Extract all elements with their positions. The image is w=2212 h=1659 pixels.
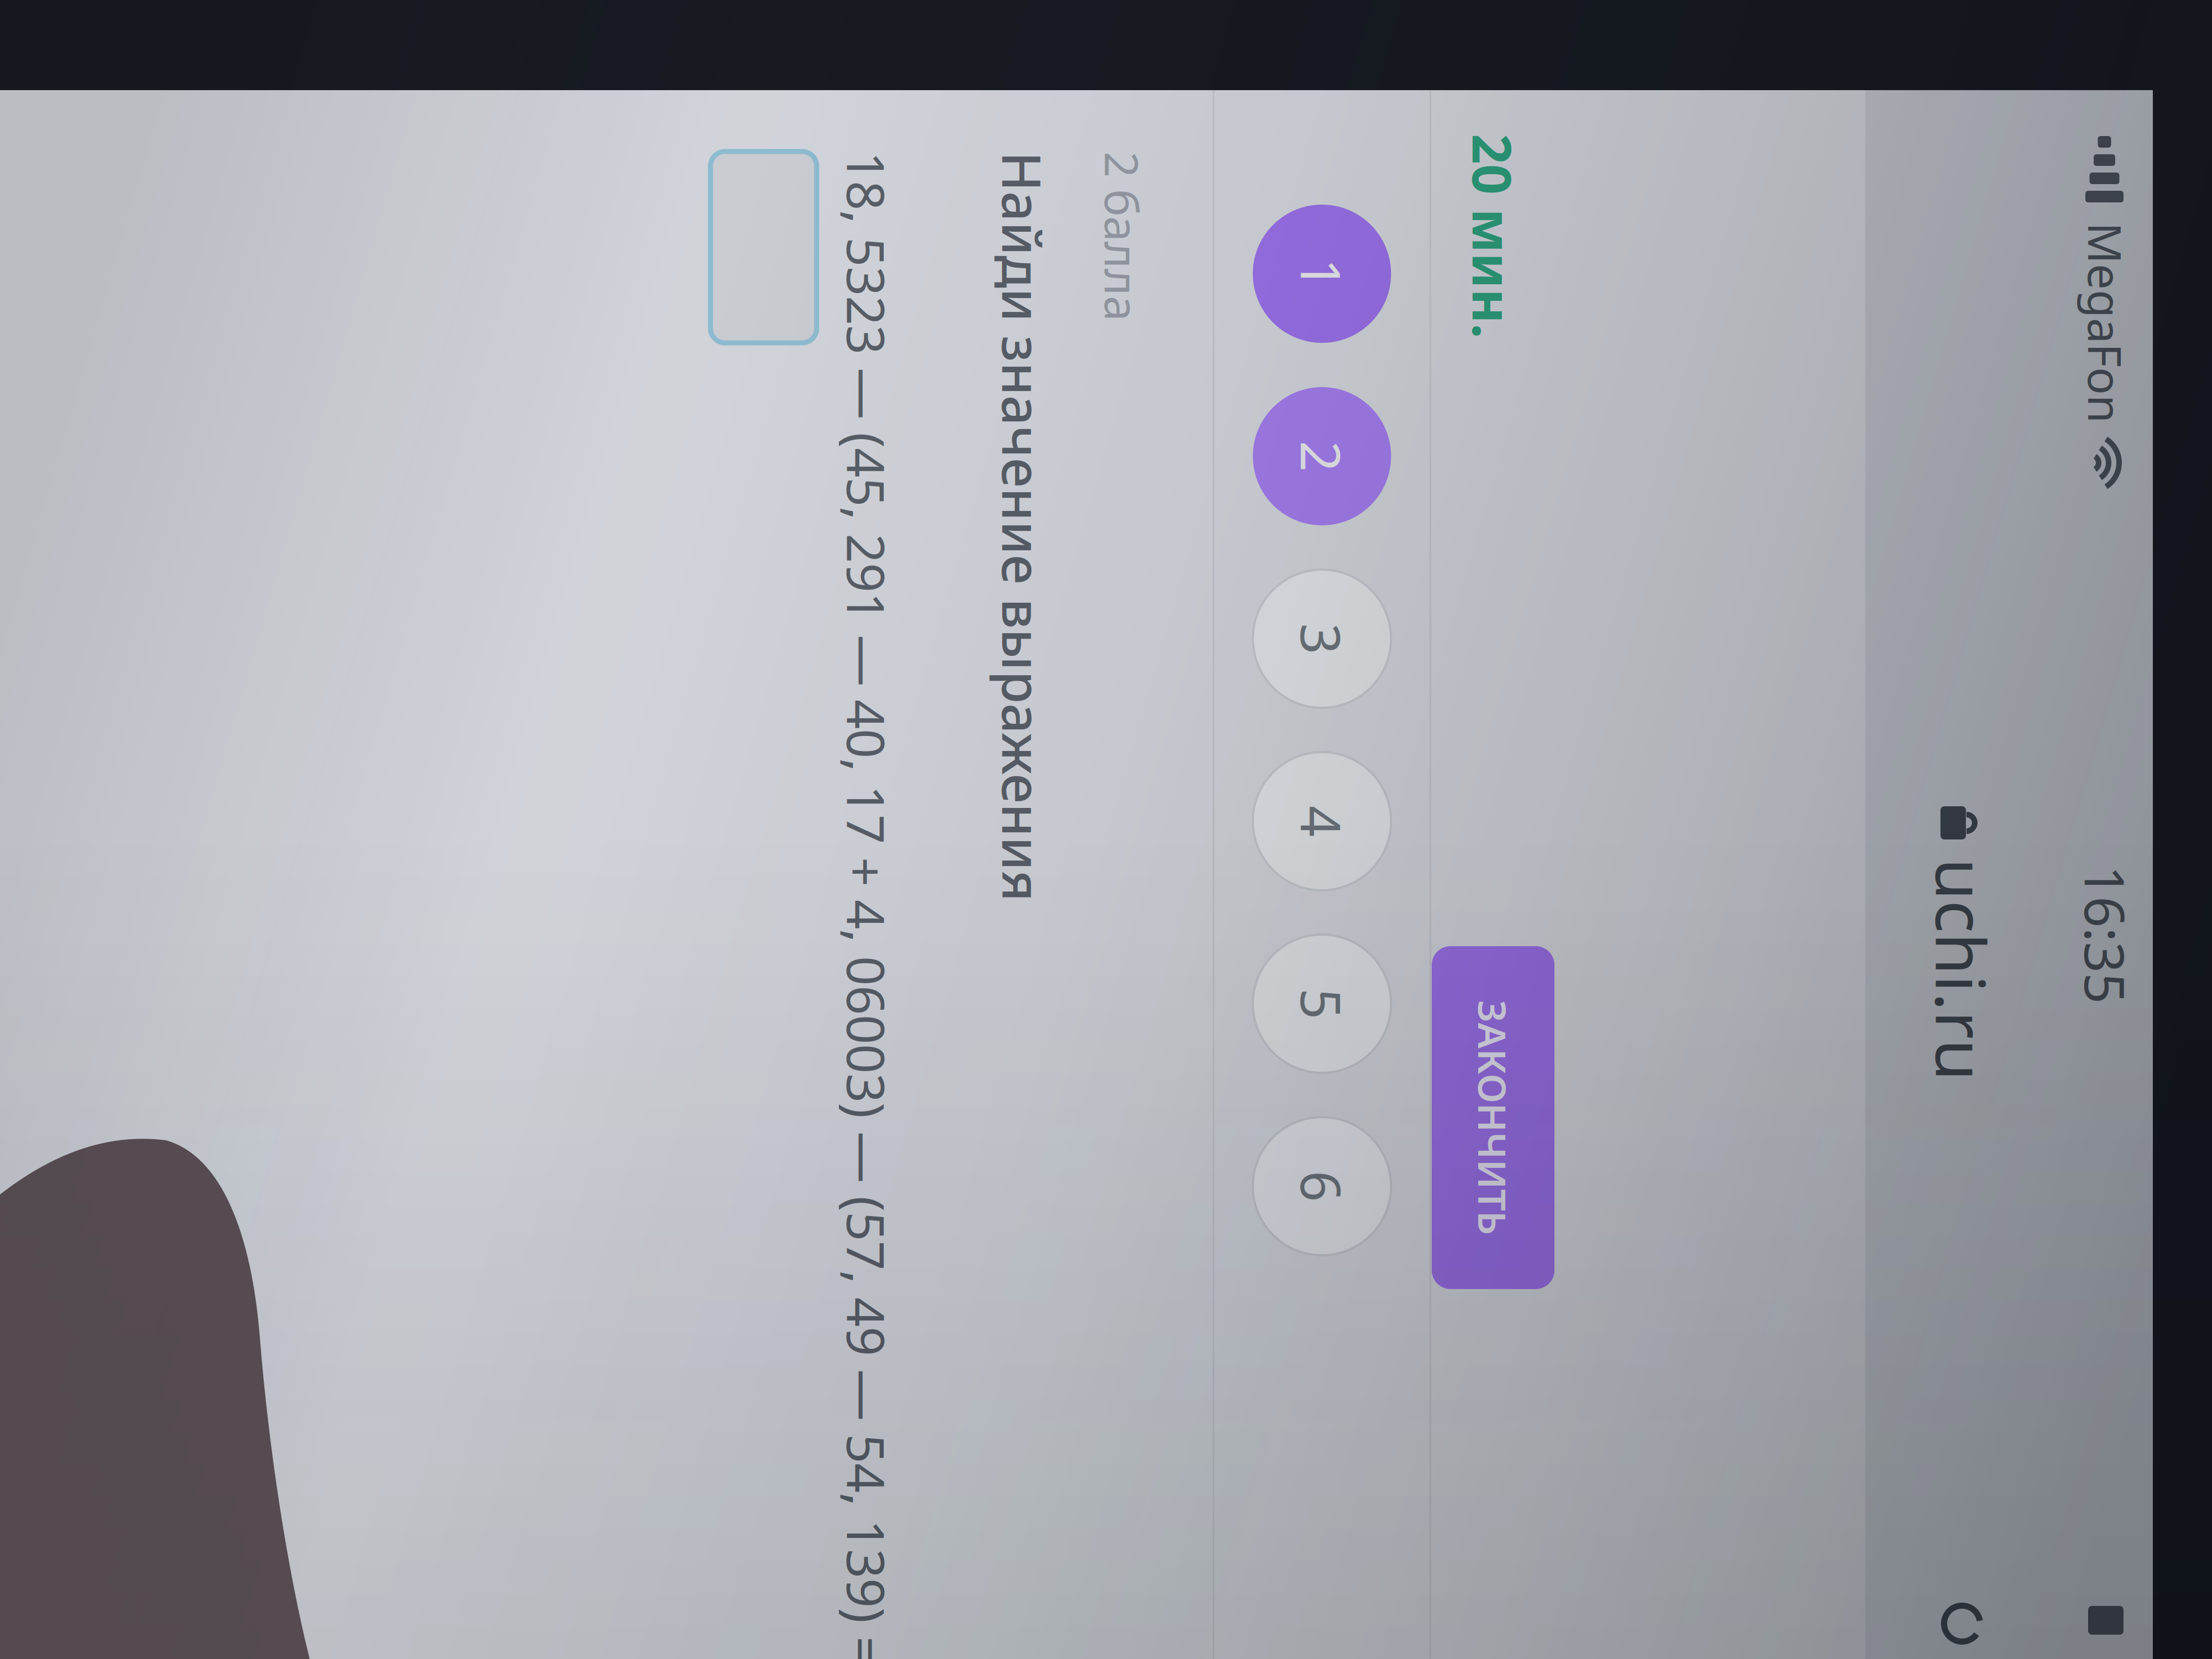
button[interactable]: ЗАКОНЧИТЬ — [990, 274, 1333, 397]
staticText: Найди значение выражения — [196, 770, 946, 841]
staticText: 4 — [850, 470, 881, 542]
staticText: 18, 5323 — (45, 291 — 40, 17 + 4, 06003)… — [196, 927, 1710, 996]
staticText: ЗАКОНЧИТЬ — [1044, 310, 1279, 361]
button[interactable]: 4 — [796, 437, 935, 575]
button[interactable]: 6 — [1161, 437, 1300, 575]
button[interactable]: 5 — [979, 437, 1117, 575]
